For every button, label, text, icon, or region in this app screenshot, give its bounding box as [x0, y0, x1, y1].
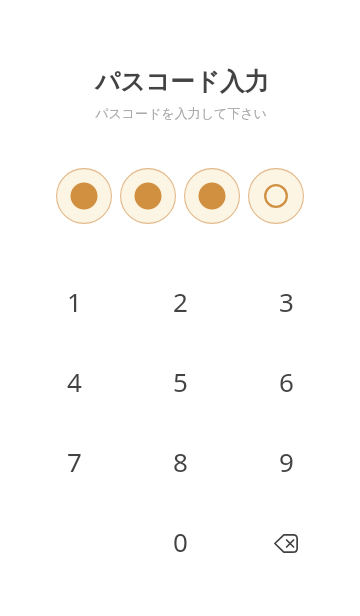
- staticText: 7: [67, 444, 82, 479]
- button[interactable]: Backspace: [233, 501, 339, 581]
- staticText: 6: [279, 364, 294, 399]
- staticText: パスコードを入力して下さい: [95, 105, 267, 121]
- button[interactable]: 4: [21, 341, 127, 421]
- staticText: 0: [173, 524, 188, 559]
- button[interactable]: 7: [21, 421, 127, 501]
- staticText: 3: [279, 284, 294, 319]
- button[interactable]: 1: [21, 261, 127, 341]
- button[interactable]: 2: [127, 261, 233, 341]
- staticText: 5: [173, 364, 188, 399]
- staticText: 9: [279, 444, 294, 479]
- button[interactable]: 5: [127, 341, 233, 421]
- button[interactable]: 9: [233, 421, 339, 501]
- staticText: 2: [173, 284, 188, 319]
- staticText: 4: [67, 364, 82, 399]
- button[interactable]: 8: [127, 421, 233, 501]
- button[interactable]: 0: [127, 501, 233, 581]
- staticText: 8: [173, 444, 188, 479]
- staticText: パスコード入力: [95, 66, 269, 97]
- button[interactable]: 6: [233, 341, 339, 421]
- other: Backspace: [274, 534, 298, 553]
- staticText: 1: [67, 284, 82, 319]
- button[interactable]: 3: [233, 261, 339, 341]
